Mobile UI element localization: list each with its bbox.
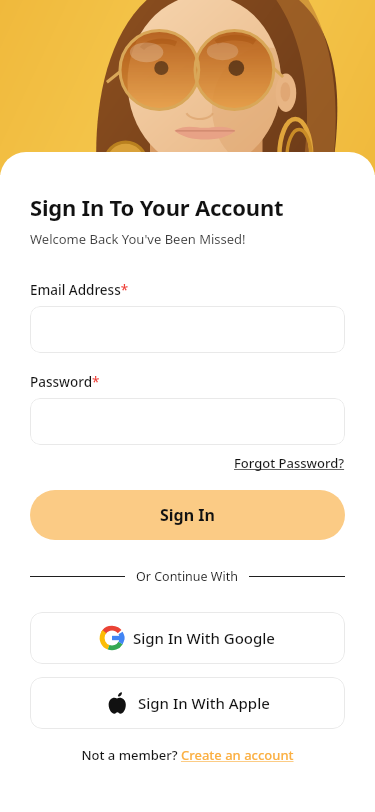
staticText: Welcome Back You've Been Missed! — [30, 230, 246, 248]
button[interactable]: Sign In — [30, 490, 345, 540]
staticText: Sign In To Your Account — [30, 192, 284, 222]
button[interactable]: Not a member? Create an account — [30, 746, 345, 764]
staticText: Or Continue With — [136, 568, 238, 585]
button[interactable]: Forgot Password? — [234, 454, 345, 472]
button[interactable]: Sign In With Apple — [30, 677, 345, 729]
staticText: Email Address* — [30, 281, 129, 299]
staticText: Sign In With Google — [133, 628, 275, 648]
staticText: Not a member? Create an account — [81, 746, 294, 764]
staticText: Password* — [30, 373, 100, 391]
staticText: Forgot Password? — [234, 454, 345, 472]
button[interactable] — [30, 398, 345, 445]
button[interactable] — [30, 306, 345, 353]
button[interactable]: Sign In With Google — [30, 612, 345, 664]
staticText: Sign In With Apple — [138, 693, 270, 713]
staticText: Sign In — [160, 504, 215, 526]
